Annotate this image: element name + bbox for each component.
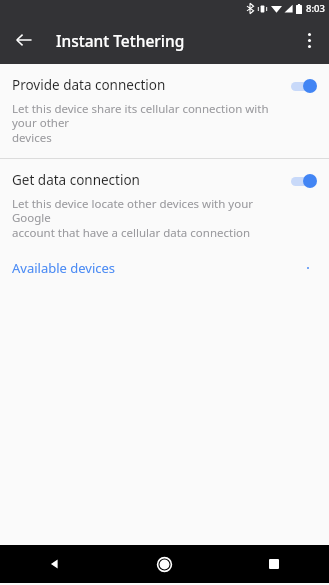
staticText: Provide data connection bbox=[12, 76, 166, 94]
staticText: Instant Tethering bbox=[56, 30, 185, 51]
button[interactable]: Back bbox=[0, 545, 109, 583]
button[interactable]: Back bbox=[6, 22, 42, 58]
button[interactable]: Toggle Get data connection bbox=[289, 172, 319, 190]
button[interactable]: More options bbox=[292, 23, 326, 57]
staticText: Let this device share its cellular conne… bbox=[12, 101, 283, 130]
button[interactable]: Recent apps bbox=[219, 545, 329, 583]
button[interactable]: Toggle Provide data connection bbox=[289, 77, 319, 95]
button[interactable]: Provide data connection bbox=[0, 64, 329, 158]
staticText: Available devices bbox=[12, 259, 307, 277]
button[interactable]: Home bbox=[109, 545, 219, 583]
button[interactable]: Get data connection bbox=[0, 159, 329, 253]
staticText: account that have a cellular data connec… bbox=[12, 225, 251, 241]
staticText: Get data connection bbox=[12, 171, 140, 189]
staticText: Let this device locate other devices wit… bbox=[12, 196, 283, 225]
button[interactable]: Available devices bbox=[0, 253, 329, 289]
staticText: devices bbox=[12, 130, 52, 146]
staticText: 8:03 bbox=[306, 2, 325, 15]
